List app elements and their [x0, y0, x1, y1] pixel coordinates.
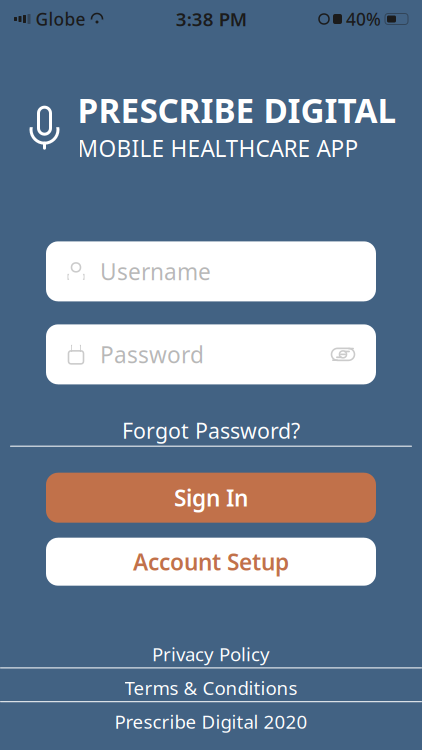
- staticText: PRESCRIBE DIGITAL: [77, 88, 396, 132]
- staticText: 40%: [346, 7, 381, 30]
- staticText: Username: [100, 256, 211, 286]
- button[interactable]: Password: [46, 324, 376, 384]
- staticText: Globe: [35, 7, 85, 30]
- button[interactable]: Sign In: [46, 473, 376, 523]
- staticText: 3:38 PM: [176, 7, 247, 31]
- button[interactable]: Username: [46, 241, 376, 301]
- staticText: Terms & Conditions: [124, 675, 297, 700]
- button[interactable]: Privacy Policy: [0, 642, 422, 668]
- staticText: Privacy Policy: [152, 642, 270, 666]
- staticText: Sign In: [174, 483, 248, 513]
- button[interactable]: Terms & Conditions: [0, 675, 422, 702]
- staticText: Prescribe Digital 2020: [114, 709, 307, 734]
- button[interactable]: Forgot Password?: [0, 412, 422, 451]
- staticText: MOBILE HEALTHCARE APP: [77, 133, 358, 163]
- staticText: Forgot Password?: [122, 416, 300, 445]
- staticText: Password: [100, 339, 204, 369]
- button[interactable]: Account Setup: [46, 538, 376, 586]
- staticText: Account Setup: [133, 547, 289, 577]
